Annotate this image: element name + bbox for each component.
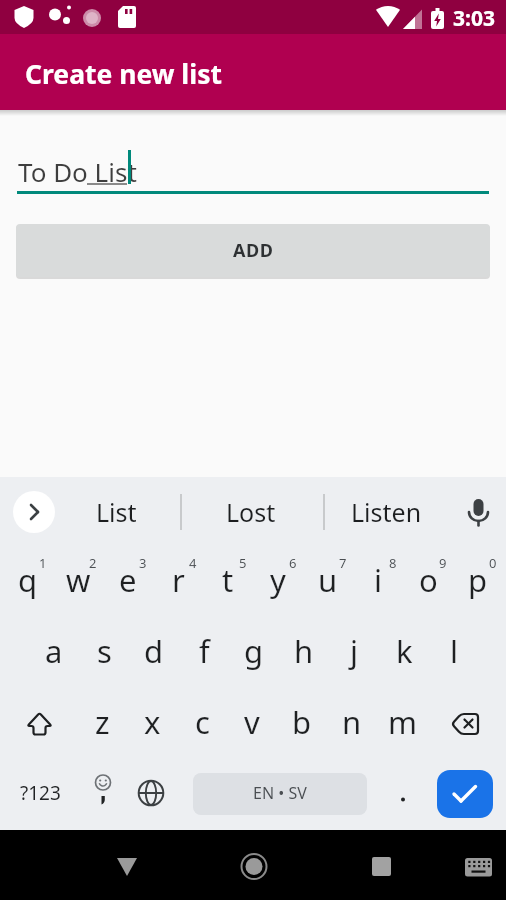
- staticText: a: [45, 630, 63, 672]
- staticText: z: [95, 701, 110, 743]
- button[interactable]: g: [229, 615, 279, 686]
- button[interactable]: [103, 843, 151, 891]
- button[interactable]: p: [453, 544, 503, 615]
- button[interactable]: t: [203, 544, 253, 615]
- staticText: l: [450, 630, 458, 672]
- button[interactable]: [357, 843, 405, 891]
- staticText: p: [468, 559, 488, 601]
- button[interactable]: m: [377, 686, 427, 757]
- button[interactable]: [383, 763, 423, 825]
- button[interactable]: j: [329, 615, 379, 686]
- staticText: ADD: [233, 238, 274, 263]
- button[interactable]: q: [3, 544, 53, 615]
- staticText: k: [396, 630, 413, 672]
- staticText: m: [388, 701, 417, 743]
- button[interactable]: h: [279, 615, 329, 686]
- button[interactable]: [437, 770, 493, 818]
- staticText: b: [292, 701, 312, 743]
- button[interactable]: Listen: [331, 484, 441, 540]
- button[interactable]: v: [227, 686, 277, 757]
- staticText: r: [172, 559, 185, 601]
- button[interactable]: Lost: [201, 484, 301, 540]
- button[interactable]: ?123: [5, 763, 75, 823]
- staticText: Lost: [226, 495, 276, 529]
- staticText: 9: [439, 554, 447, 572]
- button[interactable]: ADD: [16, 224, 490, 277]
- staticText: w: [66, 559, 91, 601]
- staticText: 6: [289, 554, 297, 572]
- staticText: y: [270, 559, 286, 601]
- staticText: s: [97, 630, 112, 672]
- staticText: i: [374, 559, 382, 601]
- button[interactable]: x: [127, 686, 177, 757]
- staticText: EN • SV: [253, 782, 307, 804]
- button[interactable]: b: [277, 686, 327, 757]
- button[interactable]: [453, 843, 501, 891]
- staticText: 4: [189, 554, 197, 572]
- button[interactable]: a: [29, 615, 79, 686]
- button[interactable]: [432, 687, 500, 758]
- button[interactable]: r: [153, 544, 203, 615]
- button[interactable]: [131, 763, 171, 825]
- staticText: h: [294, 630, 314, 672]
- staticText: Create new list: [25, 56, 222, 92]
- button[interactable]: c: [177, 686, 227, 757]
- staticText: g: [244, 630, 264, 672]
- button[interactable]: i: [353, 544, 403, 615]
- button[interactable]: f: [179, 615, 229, 686]
- staticText: To Do List: [18, 154, 137, 189]
- button[interactable]: o: [403, 544, 453, 615]
- staticText: 3: [139, 554, 147, 572]
- staticText: n: [342, 701, 362, 743]
- staticText: j: [350, 630, 358, 672]
- staticText: 2: [89, 554, 97, 572]
- staticText: x: [144, 701, 161, 743]
- staticText: q: [18, 559, 38, 601]
- button[interactable]: e: [103, 544, 153, 615]
- staticText: Listen: [351, 495, 422, 529]
- staticText: List: [96, 495, 137, 529]
- button[interactable]: [456, 490, 500, 534]
- button[interactable]: y: [253, 544, 303, 615]
- staticText: f: [199, 630, 210, 672]
- staticText: u: [318, 559, 338, 601]
- staticText: d: [144, 630, 164, 672]
- button[interactable]: n: [327, 686, 377, 757]
- staticText: 8: [389, 554, 397, 572]
- staticText: 7: [339, 554, 347, 572]
- staticText: v: [244, 701, 260, 743]
- button[interactable]: l: [429, 615, 479, 686]
- staticText: e: [119, 559, 137, 601]
- staticText: 5: [239, 554, 247, 572]
- staticText: t: [222, 559, 234, 601]
- button[interactable]: List: [66, 484, 166, 540]
- button[interactable]: [230, 843, 278, 891]
- staticText: 1: [39, 554, 47, 572]
- staticText: 3:03: [453, 4, 495, 33]
- button[interactable]: u: [303, 544, 353, 615]
- button[interactable]: [8, 687, 76, 758]
- button[interactable]: d: [129, 615, 179, 686]
- button[interactable]: [85, 763, 125, 825]
- button[interactable]: s: [79, 615, 129, 686]
- button[interactable]: [193, 773, 367, 815]
- staticText: o: [419, 559, 438, 601]
- button[interactable]: To Do List: [17, 140, 489, 192]
- button[interactable]: [13, 491, 55, 533]
- button[interactable]: w: [53, 544, 103, 615]
- staticText: 0: [489, 554, 497, 572]
- staticText: ?123: [20, 780, 61, 806]
- button[interactable]: z: [77, 686, 127, 757]
- staticText: c: [195, 701, 210, 743]
- button[interactable]: k: [379, 615, 429, 686]
